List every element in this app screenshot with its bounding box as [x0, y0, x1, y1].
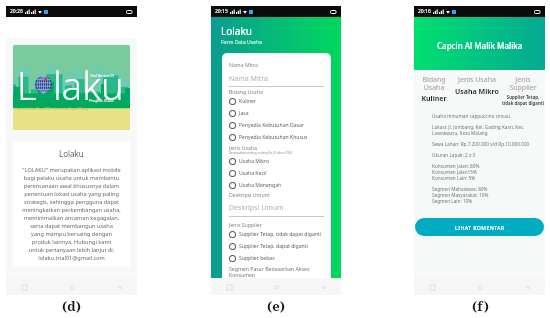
staticText: Jenis Supplier — [509, 75, 537, 92]
staticText: Bidang Usaha — [229, 88, 263, 95]
staticText: Project 2020 — [89, 98, 114, 104]
button[interactable]: Penyedia Kebutuhan Dasar — [229, 119, 324, 131]
staticText: Segmen Pasar Bedasarkan Akses Konsumen — [229, 265, 324, 278]
staticText: Capcin Al Malik Malika — [437, 40, 523, 51]
staticText: 20:15 — [215, 8, 228, 15]
staticText: laku — [53, 59, 124, 111]
button[interactable]: LIHAT KOMENTAR — [415, 218, 544, 236]
staticText: Kuliner — [421, 94, 447, 104]
staticText: Sewa Lahan: Rp.7.200.000 s/d Rp.10.800.0… — [432, 141, 530, 147]
button[interactable]: Supplier Tetap, tidak dapat diganti — [229, 228, 324, 240]
button[interactable]: Supplier Tetap, dapat diganti — [229, 240, 324, 252]
staticText: Supplier Tetap, tidak dapat diganti — [502, 94, 544, 106]
staticText: Usaha minuman cappuccino cincau — [432, 113, 510, 119]
staticText: Form Data Usaha — [221, 39, 262, 46]
staticText: Ukuran Lapak: 2 x 3 — [432, 152, 476, 158]
staticText: (e) — [267, 297, 285, 315]
staticText: Jenis Usaha — [458, 75, 496, 85]
staticText: Deskripsi Umum — [229, 203, 284, 213]
staticText: Konsumen Jalan: 80% — [432, 163, 480, 169]
staticText: Konsumen Jalan15% — [432, 169, 477, 175]
button[interactable]: Usaha Mikro — [229, 155, 324, 167]
staticText: (d) — [62, 297, 81, 315]
staticText: "LOLAKU" merupakan aplikasi mobile bagi … — [22, 166, 121, 262]
button[interactable]: Home — [268, 279, 284, 295]
staticText: Lolaku — [221, 24, 252, 38]
staticText: Bidang Usaha — [422, 75, 446, 92]
staticText: Kuliner — [239, 98, 257, 105]
staticText: Berdasarkan undang-undang No.20 tahun 20… — [229, 151, 292, 155]
button[interactable]: Usaha Kecil — [229, 167, 324, 179]
staticText: Usaha Mikro — [455, 87, 499, 97]
button[interactable]: Home — [472, 279, 488, 295]
staticText: Segmen Mahasiswa: 80% — [432, 186, 488, 192]
button[interactable]: Home — [64, 279, 80, 295]
staticText: Nama Mitra — [229, 74, 268, 84]
staticText: Usaha Mikro — [239, 158, 270, 165]
staticText: LIHAT KOMENTAR — [455, 224, 505, 231]
staticText: Deskripsi Umum — [229, 191, 270, 198]
staticText: Supplier Tetap, tidak dapat diganti — [239, 231, 322, 238]
staticText: Jenis Usaha — [229, 144, 258, 151]
staticText: Lokasi: Jl. Jombang, Kel. Gading Kasri, … — [432, 124, 539, 136]
staticText: (f) — [472, 297, 489, 315]
button[interactable]: Recent apps — [424, 279, 440, 295]
button[interactable]: Kuliner — [229, 95, 324, 107]
button[interactable]: Recent apps — [221, 279, 237, 295]
staticText: Trial Version 01 — [90, 73, 115, 78]
staticText: Segmen Masyarakat: 10% — [432, 192, 489, 198]
staticText: Supplier Tetap, dapat diganti — [239, 243, 308, 250]
button[interactable]: Usaha Menengah — [229, 179, 324, 191]
staticText: Supplier bebas — [239, 255, 275, 262]
staticText: Usaha Menengah — [239, 182, 282, 189]
staticText: 20:16 — [418, 8, 431, 15]
staticText: L — [17, 59, 37, 111]
staticText: Nama Mitra — [229, 61, 258, 68]
staticText: Segmen Lain: 10% — [432, 198, 473, 204]
staticText: Usaha Kecil — [239, 170, 267, 177]
staticText: Penyedia Kebutuhan Khusus — [239, 134, 308, 141]
staticText: Lolaku — [59, 148, 84, 159]
staticText: Created : Lolaku Team 2020 - Universitas… — [15, 107, 89, 111]
staticText: 20:26 — [10, 8, 23, 15]
staticText: Konsumen Lain: 5% — [432, 175, 476, 181]
staticText: Jenis Supplier — [229, 221, 262, 228]
button[interactable]: Recent apps — [16, 279, 32, 295]
staticText: Penyedia Kebutuhan Dasar — [239, 122, 304, 129]
staticText: Jasa — [239, 110, 249, 117]
button[interactable]: Jasa — [229, 107, 324, 119]
button[interactable]: Supplier bebas — [229, 252, 324, 264]
button[interactable]: Penyedia Kebutuhan Khusus — [229, 131, 324, 143]
